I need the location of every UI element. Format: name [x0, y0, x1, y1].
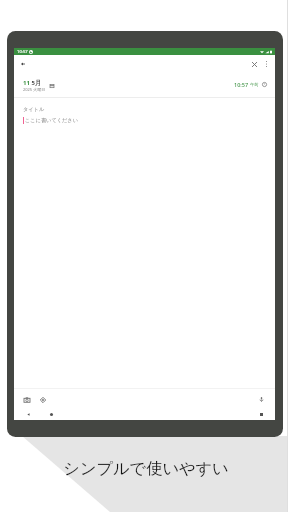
staticText: 2025 火曜日: [23, 87, 46, 92]
staticText: 10:57: [234, 81, 250, 88]
button[interactable]: More options: [259, 57, 273, 71]
staticText: ここに書いてください: [25, 117, 78, 124]
button[interactable]: Draw: [36, 393, 49, 406]
button[interactable]: Camera: [20, 393, 33, 406]
staticText: タイトル: [23, 106, 45, 113]
staticText: シンプルで使いやすい: [63, 458, 229, 478]
staticText: 午前: [250, 82, 259, 87]
staticText: 11: [23, 79, 30, 87]
button[interactable]: Back: [16, 57, 30, 71]
button[interactable]: Recents: [255, 408, 267, 420]
button[interactable]: Microphone: [255, 393, 268, 406]
button[interactable]: Back: [22, 408, 34, 420]
staticText: 10:57: [17, 49, 28, 55]
button[interactable]: Home: [45, 408, 57, 420]
staticText: 5月: [30, 79, 41, 87]
button[interactable]: Close: [247, 57, 261, 71]
